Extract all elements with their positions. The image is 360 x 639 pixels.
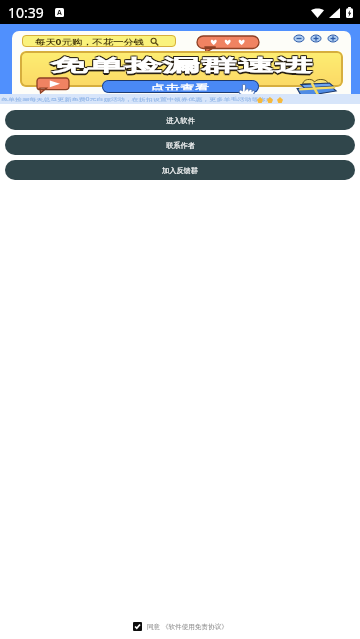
staticText: 免单捡漏群速进 bbox=[49, 55, 312, 76]
staticText: 免单捡漏群速进 bbox=[51, 56, 314, 77]
button[interactable]: 进入软件 bbox=[5, 110, 355, 130]
button[interactable]: 点击查看 bbox=[102, 80, 259, 93]
button[interactable]: 同意 《软件使用免责协议》 bbox=[131, 620, 230, 633]
staticText: A bbox=[57, 8, 62, 17]
staticText: 免单捡漏群速进 bbox=[50, 55, 313, 76]
staticText: 免单捡漏每天总是更新免费0元白嫖活动，在折扣设置中领券优惠，更多羊毛活动等你来 bbox=[1, 96, 273, 102]
staticText: 点击查看 bbox=[150, 82, 211, 91]
staticText: 联系作者 bbox=[166, 141, 195, 150]
staticText: 加入反馈群 bbox=[162, 166, 198, 175]
staticText: 进入软件 bbox=[166, 116, 195, 125]
staticText: 免单捡漏群速进 bbox=[49, 54, 312, 75]
button[interactable]: 联系作者 bbox=[5, 135, 355, 155]
staticText: 免单捡漏群速进 bbox=[51, 55, 314, 76]
staticText: 10:39 bbox=[8, 3, 44, 22]
button[interactable]: 加入反馈群 bbox=[5, 160, 355, 180]
staticText: 免单捡漏群速进 bbox=[50, 54, 313, 75]
staticText: 同意 《软件使用免责协议》 bbox=[147, 622, 228, 631]
staticText: 每天0元购，不花一分钱 bbox=[35, 36, 145, 45]
staticText: 免单捡漏群速进 bbox=[50, 57, 313, 78]
staticText: 免单捡漏群速进 bbox=[51, 54, 314, 75]
staticText: 免单捡漏群速进 bbox=[49, 56, 312, 77]
